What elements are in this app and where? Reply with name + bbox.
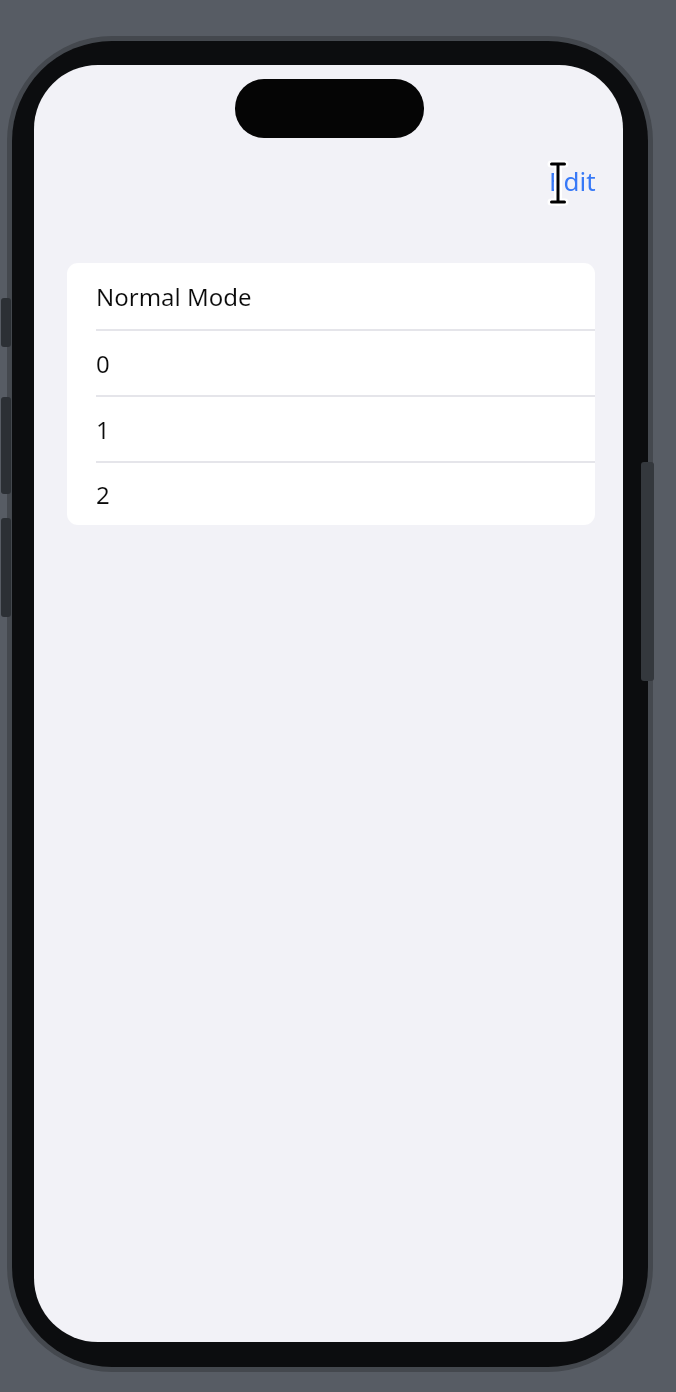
staticText: 0 (96, 347, 110, 380)
staticText: Edit (549, 163, 596, 198)
staticText: 1 (96, 413, 110, 446)
button[interactable]: Edit (549, 163, 596, 198)
button[interactable]: 2 (67, 463, 595, 525)
button[interactable]: 0 (67, 331, 595, 395)
staticText: Normal Mode (96, 280, 252, 313)
button[interactable]: 1 (67, 397, 595, 461)
staticText: 2 (96, 478, 110, 511)
button[interactable]: Normal Mode (67, 263, 595, 329)
